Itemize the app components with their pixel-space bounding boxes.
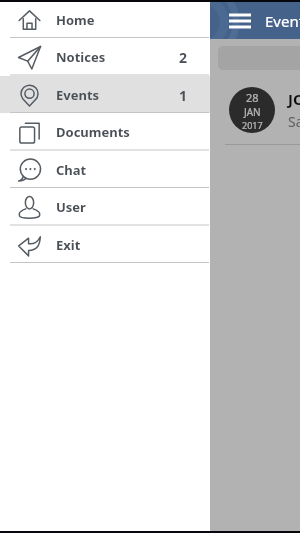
staticText: JAN (244, 105, 261, 119)
staticText: Home (56, 11, 95, 29)
staticText: 2017 (242, 119, 263, 131)
staticText: Events (56, 86, 100, 104)
button[interactable]: Open navigation drawer (229, 7, 251, 35)
button[interactable]: 28 (229, 82, 300, 138)
staticText: 28 (246, 90, 259, 105)
button[interactable]: User (0, 188, 210, 226)
staticText: Chat (56, 161, 87, 179)
button[interactable]: Home (0, 1, 210, 39)
button[interactable]: Documents (0, 113, 210, 151)
button[interactable]: Notices (0, 38, 210, 76)
staticText: Events (265, 11, 300, 31)
staticText: JOHN BLACK (288, 89, 300, 109)
staticText: 2 (179, 48, 188, 67)
staticText: 1 (179, 86, 188, 105)
button[interactable]: Exit (0, 226, 210, 264)
staticText: Documents (56, 123, 130, 141)
button[interactable]: Events (0, 76, 210, 114)
button[interactable]: Close navigation drawer (0, 39, 300, 533)
staticText: User (56, 198, 86, 216)
staticText: Notices (56, 48, 106, 66)
staticText: Exit (56, 236, 81, 254)
button[interactable]: Chat (0, 151, 210, 189)
staticText: Saturday, 28 Jan (288, 112, 300, 131)
